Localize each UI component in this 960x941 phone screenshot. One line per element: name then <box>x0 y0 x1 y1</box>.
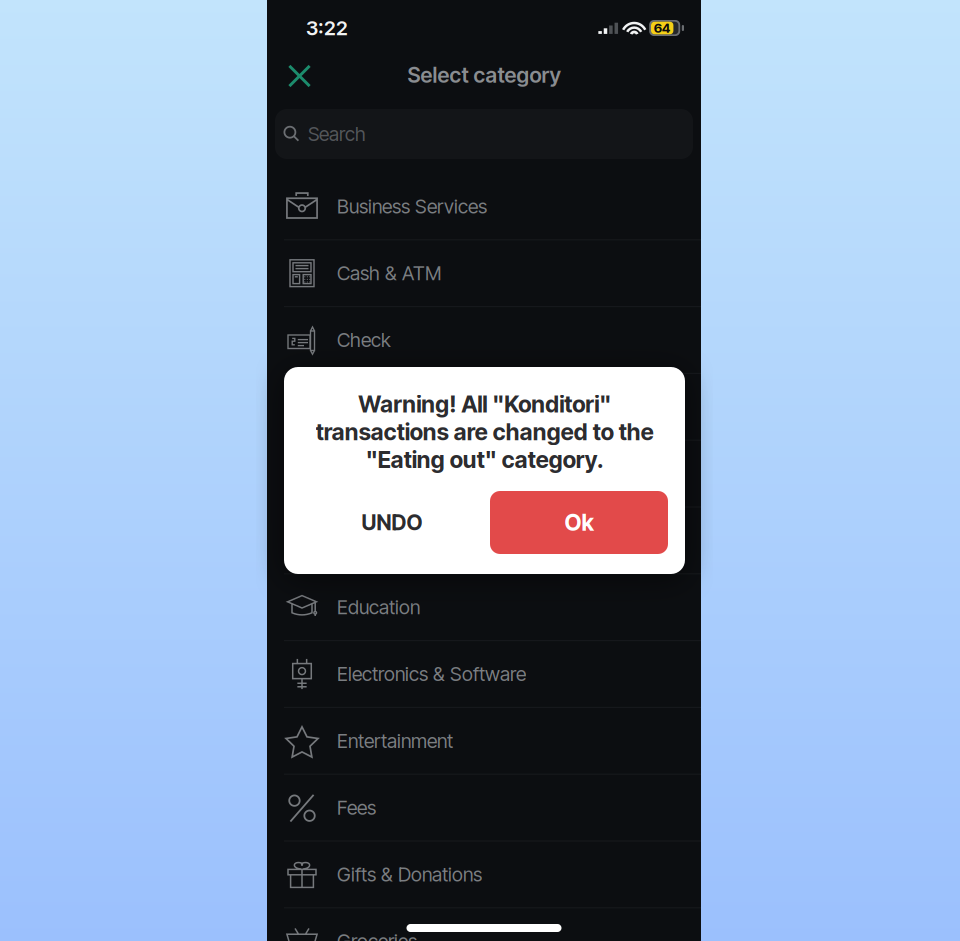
button[interactable]: Search <box>275 109 693 159</box>
staticText: Gifts & Donations <box>337 863 482 886</box>
button[interactable]: Eating out <box>267 507 701 574</box>
staticText: Cash & ATM <box>337 261 441 285</box>
staticText: Business Services <box>337 195 487 218</box>
button[interactable]: Ok <box>490 491 668 554</box>
button[interactable]: Coffee shops <box>267 441 701 507</box>
button[interactable]: Gifts & Donations <box>267 841 701 908</box>
staticText: Search <box>308 122 366 146</box>
staticText: 3:22 <box>306 16 348 40</box>
staticText: UNDO <box>361 510 422 535</box>
staticText: Entertainment <box>337 729 453 753</box>
staticText: Warning! All "Konditori" transactions ar… <box>315 390 653 474</box>
staticText: Ok <box>564 509 593 536</box>
staticText: Select category <box>407 62 560 88</box>
button[interactable]: UNDO <box>335 491 449 554</box>
button[interactable]: Entertainment <box>267 708 701 775</box>
button[interactable]: Close <box>267 56 324 101</box>
staticText: Eating out <box>337 529 421 552</box>
staticText: Groceries <box>337 929 417 941</box>
button[interactable]: Electronics & Software <box>267 641 701 708</box>
button[interactable]: Education <box>267 574 701 641</box>
staticText: Education <box>337 595 420 619</box>
button[interactable]: Groceries <box>267 908 701 941</box>
staticText: Coffee shops <box>337 462 449 485</box>
button[interactable]: Clothing <box>267 374 701 441</box>
staticText: Electronics & Software <box>337 662 526 686</box>
button[interactable]: Business Services <box>267 173 701 240</box>
button[interactable]: Fees <box>267 775 701 841</box>
staticText: Clothing <box>337 395 407 419</box>
staticText: 64 <box>654 20 671 36</box>
button[interactable]: Check <box>267 307 701 374</box>
staticText: Check <box>337 328 391 352</box>
staticText: Fees <box>337 796 376 819</box>
button[interactable]: Cash & ATM <box>267 240 701 307</box>
